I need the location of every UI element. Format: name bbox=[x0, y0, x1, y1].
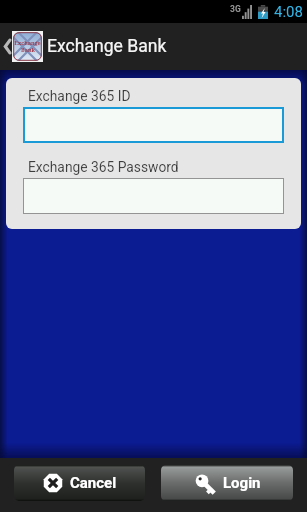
button[interactable]: Navigate up bbox=[0, 23, 307, 70]
staticText: Bank bbox=[21, 46, 35, 53]
staticText: Exchange 365 ID bbox=[28, 88, 131, 104]
button[interactable]: Exchange 365 ID input bbox=[23, 107, 284, 143]
staticText: Cancel bbox=[70, 474, 117, 492]
staticText: 4:08 bbox=[274, 3, 303, 21]
button[interactable]: Exchange 365 Password input bbox=[23, 178, 284, 214]
button[interactable]: Cancel bbox=[14, 465, 145, 501]
staticText: Exchange bbox=[14, 39, 41, 46]
staticText: Login bbox=[223, 474, 261, 492]
staticText: 3G bbox=[230, 4, 241, 14]
button[interactable]: Login bbox=[161, 465, 293, 501]
staticText: Exchange Bank bbox=[47, 36, 167, 57]
staticText: Exchange 365 Password bbox=[28, 159, 179, 175]
